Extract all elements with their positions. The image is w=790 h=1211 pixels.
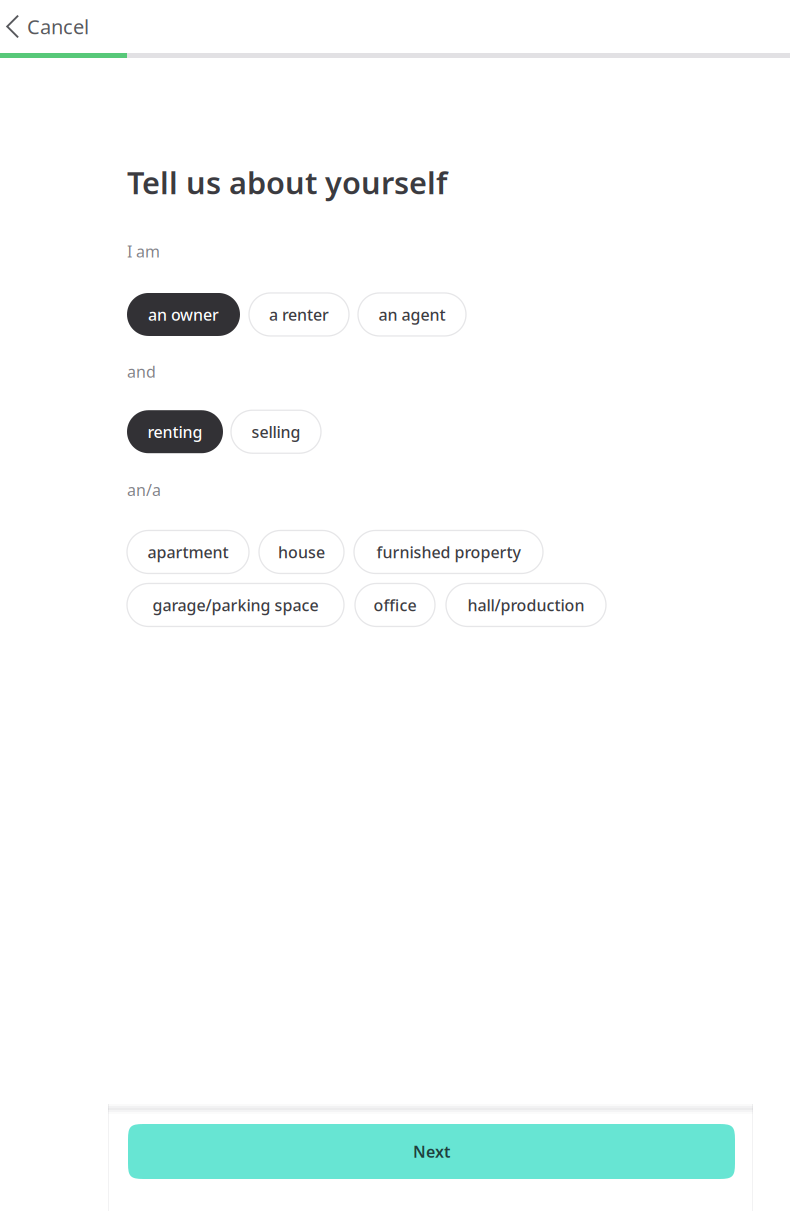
- button[interactable]: a renter: [249, 293, 349, 336]
- staticText: a renter: [269, 304, 329, 325]
- button[interactable]: renting: [127, 410, 223, 453]
- staticText: Tell us about yourself: [127, 162, 447, 203]
- button[interactable]: office: [355, 583, 435, 626]
- button[interactable]: hall/production: [446, 583, 606, 626]
- staticText: garage/parking space: [152, 594, 318, 615]
- button[interactable]: house: [259, 530, 344, 573]
- button[interactable]: Next: [128, 1124, 735, 1179]
- staticText: selling: [251, 421, 300, 442]
- staticText: hall/production: [467, 594, 584, 615]
- button[interactable]: furnished property: [354, 530, 543, 573]
- button[interactable]: garage/parking space: [127, 583, 344, 626]
- button[interactable]: Cancel: [0, 0, 107, 53]
- staticText: an owner: [148, 304, 219, 325]
- button[interactable]: selling: [231, 410, 321, 453]
- staticText: an/a: [127, 479, 161, 500]
- staticText: Cancel: [27, 13, 89, 40]
- staticText: Next: [413, 1141, 450, 1162]
- staticText: apartment: [147, 541, 228, 562]
- staticText: and: [127, 361, 156, 382]
- staticText: office: [373, 594, 416, 615]
- staticText: I am: [127, 241, 160, 262]
- staticText: renting: [147, 421, 202, 442]
- button[interactable]: an agent: [358, 293, 466, 336]
- staticText: an agent: [378, 304, 445, 325]
- button[interactable]: apartment: [127, 530, 249, 573]
- button[interactable]: an owner: [127, 293, 240, 336]
- staticText: furnished property: [376, 541, 520, 562]
- staticText: house: [278, 541, 325, 562]
